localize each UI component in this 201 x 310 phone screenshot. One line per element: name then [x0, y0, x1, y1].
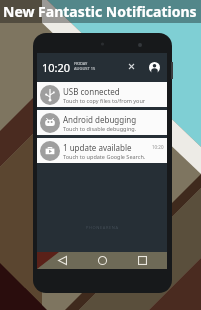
staticText: FRIDAY: [74, 61, 88, 66]
staticText: Touch to disable debugging.: [63, 125, 137, 132]
button[interactable]: USB connected: [37, 82, 167, 107]
button[interactable]: Android debugging enabled: [37, 110, 167, 135]
button[interactable]: Back: [47, 252, 77, 269]
button[interactable]: 1 update available: [37, 138, 167, 163]
button[interactable]: Recents: [127, 252, 157, 269]
staticText: Android debugging enabled: [63, 114, 164, 125]
staticText: New Fantastic Notifications: [3, 2, 197, 21]
button[interactable]: Home: [87, 252, 117, 269]
staticText: 1 update available: [63, 142, 132, 153]
button[interactable]: Account: [148, 61, 160, 73]
staticText: PHONEARENA: [86, 225, 119, 230]
staticText: Touch to update Google Search.: [63, 153, 146, 160]
staticText: USB connected: [63, 86, 120, 97]
staticText: 10:20: [152, 144, 164, 150]
staticText: AUGUST 15: [74, 66, 96, 71]
staticText: Touch to copy files to/from your compute…: [63, 97, 164, 104]
staticText: 10:20: [42, 60, 71, 75]
button[interactable]: Clear all notifications: [125, 60, 137, 72]
